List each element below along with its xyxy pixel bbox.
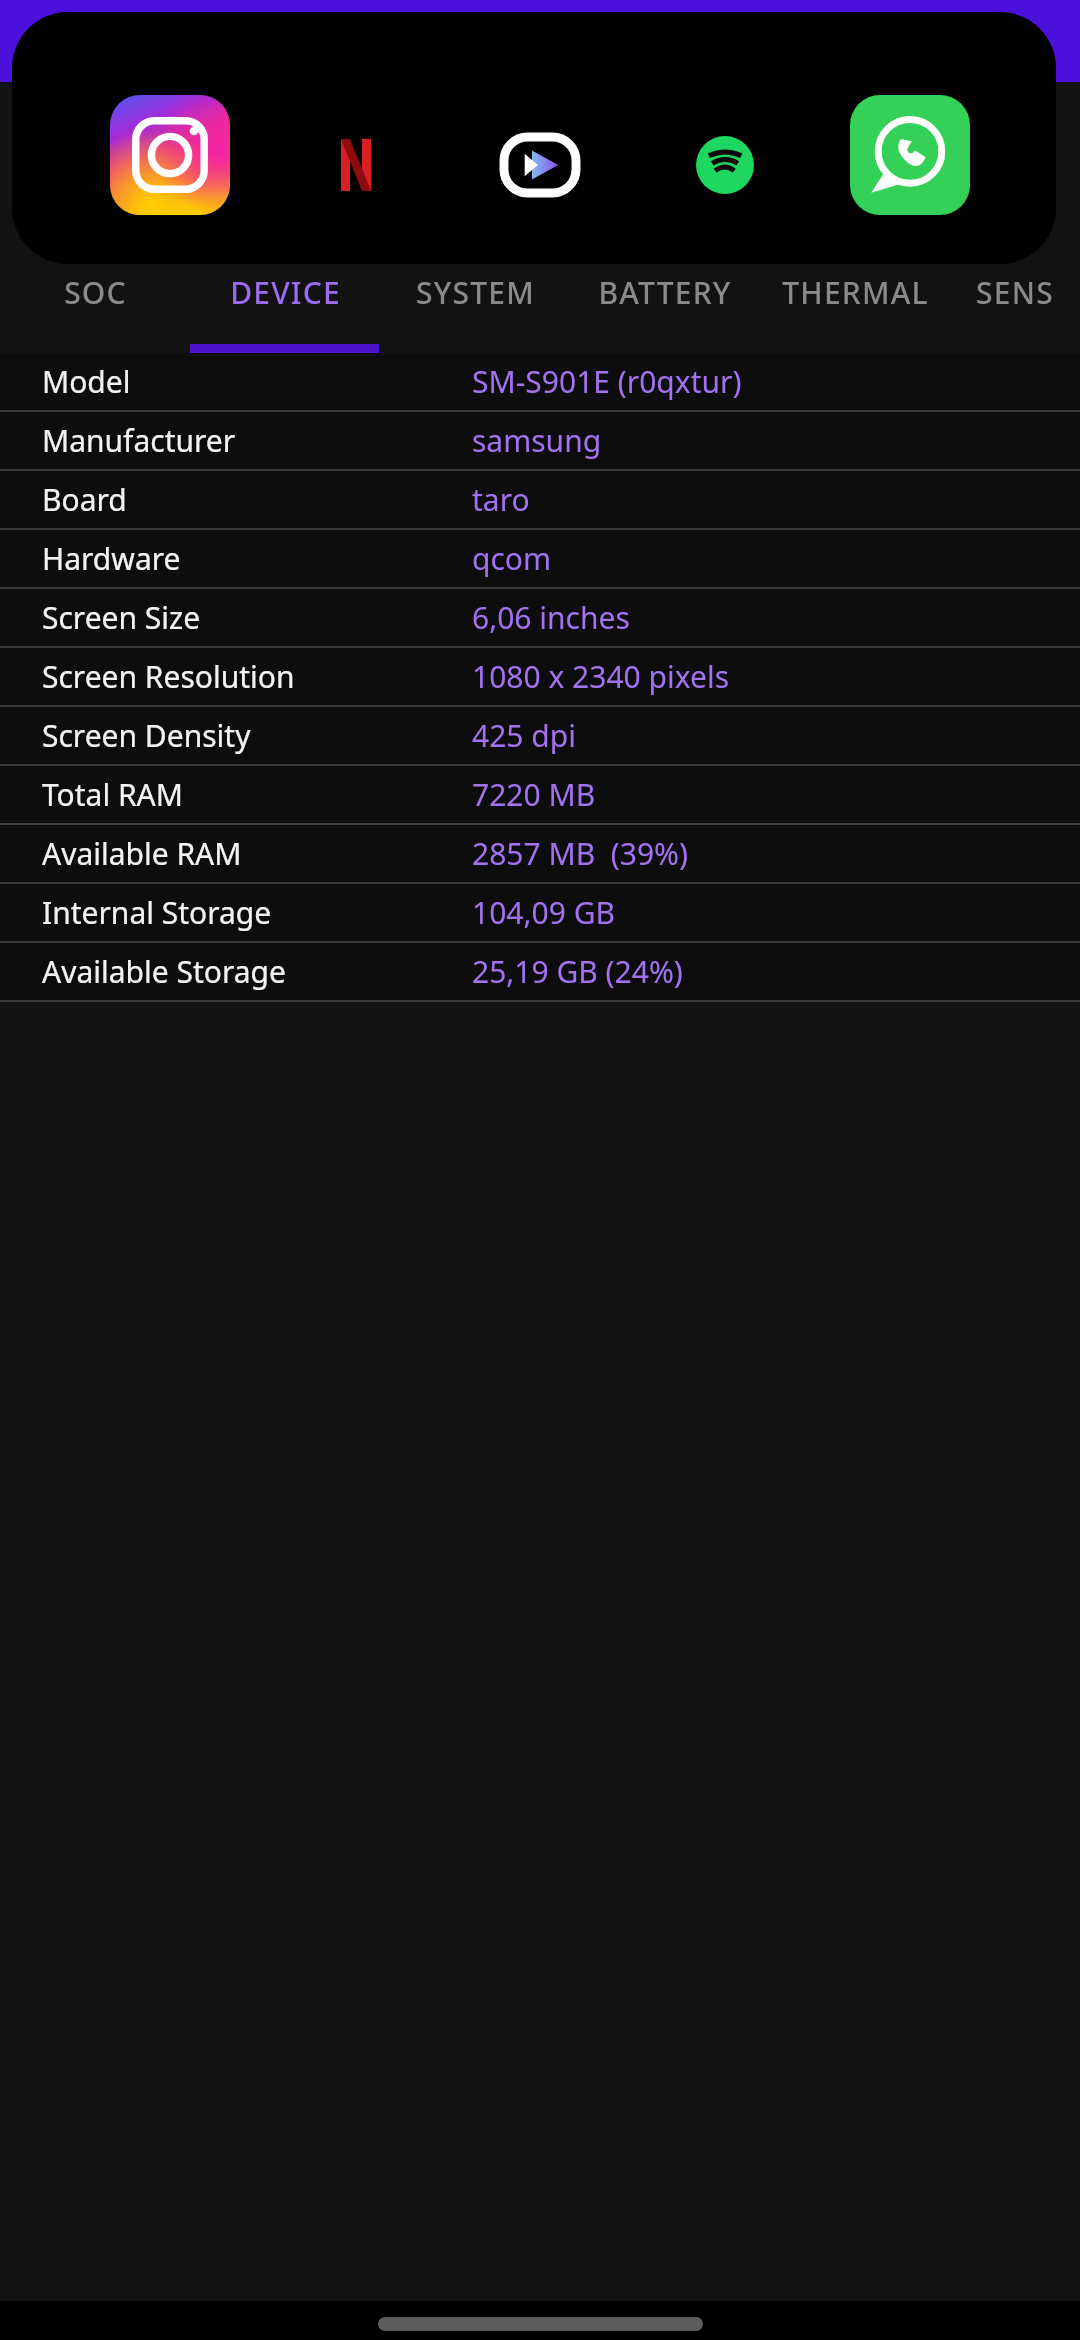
button[interactable]: Screen Density (0, 707, 1080, 764)
staticText: Board (42, 479, 127, 520)
staticText: 25,19 GB (24%) (472, 951, 683, 992)
button[interactable]: Internal Storage (0, 884, 1080, 941)
staticText: Screen Resolution (42, 656, 295, 697)
button[interactable]: Available RAM (0, 825, 1080, 882)
button[interactable]: THERMAL (760, 272, 950, 332)
staticText: Internal Storage (42, 892, 272, 933)
button[interactable]: SOC (0, 272, 190, 332)
button[interactable]: Board (0, 471, 1080, 528)
button[interactable]: Manufacturer (0, 412, 1080, 469)
staticText: 1080 x 2340 pixels (472, 656, 730, 697)
button[interactable]: Spotify (675, 105, 775, 225)
staticText: SM-S901E (r0qxtur) (472, 361, 742, 402)
staticText: samsung (472, 420, 602, 461)
button[interactable]: Model (0, 353, 1080, 410)
button[interactable]: SYSTEM (380, 272, 570, 332)
button[interactable]: Netflix (306, 105, 406, 225)
button[interactable]: BATTERY (570, 272, 760, 332)
button[interactable]: Available Storage (0, 943, 1080, 1000)
staticText: 2857 MB (39%) (472, 833, 688, 874)
staticText: Manufacturer (42, 420, 236, 461)
staticText: Screen Density (42, 715, 251, 756)
staticText: THERMAL (782, 272, 929, 313)
button[interactable]: Screen Size (0, 589, 1080, 646)
staticText: Screen Size (42, 597, 201, 638)
button[interactable]: SENS (950, 272, 1080, 332)
staticText: Hardware (42, 538, 181, 579)
button[interactable]: DEVICE (190, 272, 380, 332)
staticText: SYSTEM (416, 272, 535, 313)
staticText: qcom (472, 538, 552, 579)
staticText: 6,06 inches (472, 597, 630, 638)
button[interactable]: Screen Resolution (0, 648, 1080, 705)
button[interactable]: WhatsApp (850, 95, 970, 215)
staticText: Model (42, 361, 131, 402)
button[interactable]: Hardware (0, 530, 1080, 587)
staticText: Available Storage (42, 951, 286, 992)
button[interactable]: Instagram (110, 95, 230, 215)
staticText: 7220 MB (472, 774, 596, 815)
staticText: Available RAM (42, 833, 242, 874)
staticText: Total RAM (42, 774, 183, 815)
staticText: BATTERY (598, 272, 732, 313)
staticText: taro (472, 479, 530, 520)
button[interactable]: Prime Video (490, 105, 590, 225)
staticText: SENS (976, 272, 1054, 313)
staticText: 104,09 GB (472, 892, 615, 933)
staticText: DEVICE (230, 272, 341, 313)
staticText: 425 dpi (472, 715, 576, 756)
button[interactable]: Total RAM (0, 766, 1080, 823)
staticText: SOC (64, 272, 127, 313)
